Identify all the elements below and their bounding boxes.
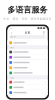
button[interactable]: › — [7, 55, 47, 60]
button[interactable]: › — [7, 80, 47, 85]
staticText: 其他设置 — [9, 77, 13, 79]
staticText: ‹ — [11, 30, 12, 35]
staticText: 搜索 — [14, 36, 16, 38]
staticText: 设置 — [24, 31, 30, 34]
staticText: › — [45, 50, 46, 54]
button[interactable]: › — [7, 70, 47, 75]
staticText: 中文、英语、日语、韩语等多国语言 — [3, 17, 51, 21]
staticText: › — [45, 91, 46, 94]
button[interactable]: › — [7, 40, 47, 45]
button[interactable]: › — [7, 65, 47, 70]
button[interactable]: 搜索 — [9, 35, 46, 39]
staticText: › — [45, 41, 46, 44]
staticText: › — [45, 71, 46, 75]
button[interactable]: › — [7, 60, 47, 65]
staticText: › — [45, 86, 46, 89]
staticText: › — [45, 61, 46, 64]
button[interactable]: More options — [42, 31, 46, 35]
staticText: › — [45, 66, 46, 69]
staticText: › — [45, 55, 46, 59]
button[interactable]: › — [7, 49, 47, 54]
button[interactable]: › — [7, 85, 47, 90]
button[interactable]: Back — [9, 31, 13, 35]
button[interactable]: › — [7, 90, 47, 95]
staticText: 9:41 — [10, 27, 13, 29]
staticText: 多语言服务 — [7, 5, 47, 15]
staticText: 常用功能 — [9, 47, 13, 49]
staticText: › — [45, 80, 46, 84]
